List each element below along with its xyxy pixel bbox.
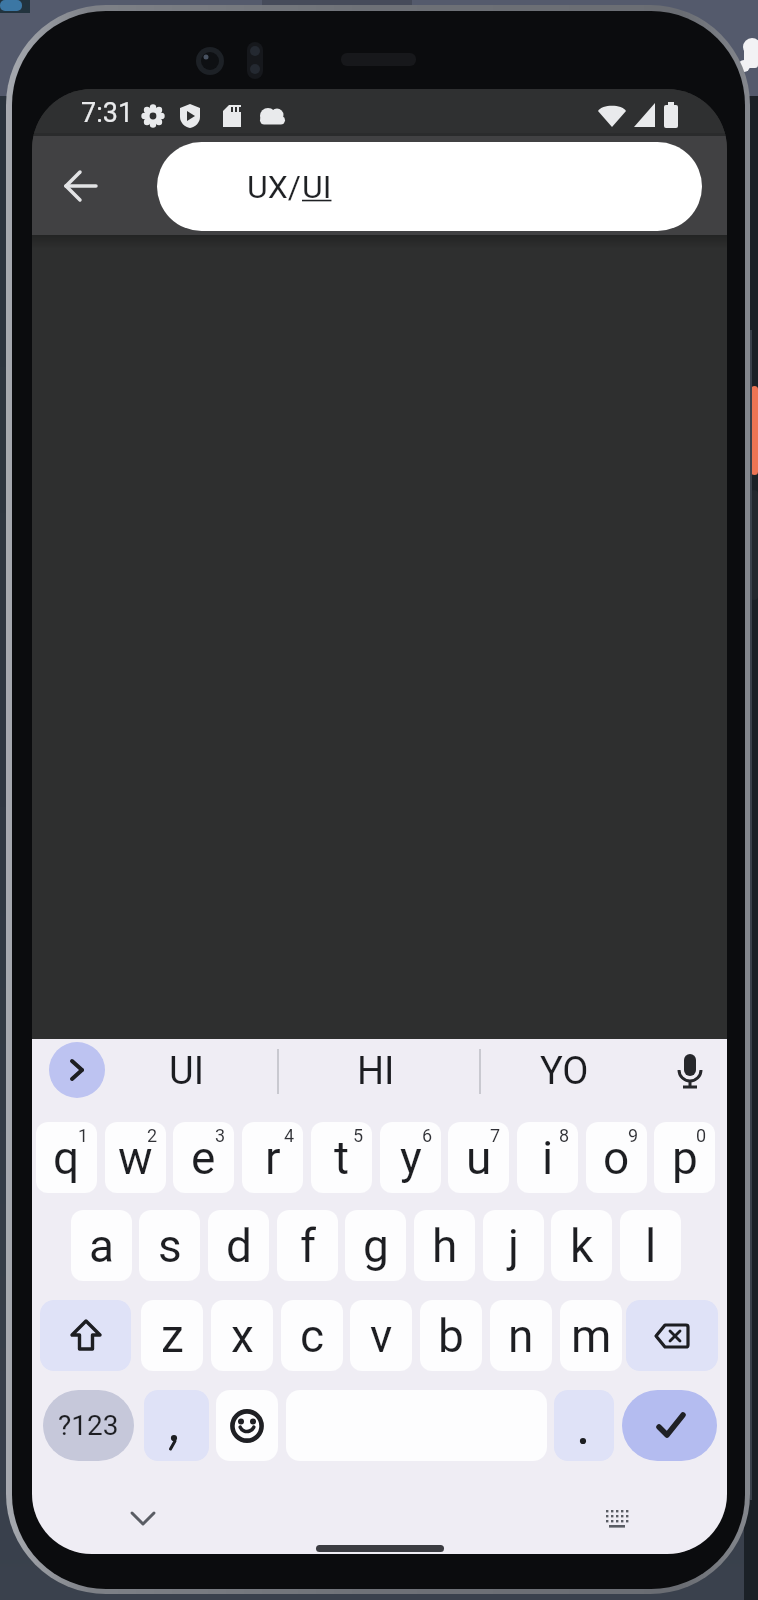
button[interactable] <box>57 162 105 210</box>
button[interactable]: h <box>414 1210 475 1281</box>
button[interactable]: y <box>380 1122 441 1193</box>
staticText: UX/ <box>247 168 302 206</box>
staticText: 2 <box>147 1125 158 1146</box>
staticText: 1 <box>78 1125 89 1146</box>
staticText: c <box>300 1309 325 1363</box>
button[interactable]: u <box>448 1122 509 1193</box>
staticText: t <box>334 1131 350 1185</box>
button[interactable]: HI <box>316 1044 436 1099</box>
staticText: b <box>438 1309 464 1363</box>
staticText: 0 <box>696 1125 707 1146</box>
button[interactable] <box>658 1039 722 1103</box>
staticText: z <box>161 1309 184 1363</box>
staticText: q <box>53 1131 80 1185</box>
button[interactable] <box>622 1390 717 1461</box>
button[interactable]: l <box>620 1210 681 1281</box>
staticText: y <box>400 1131 422 1185</box>
staticText: g <box>363 1219 389 1273</box>
staticText: o <box>603 1131 630 1185</box>
staticText: 5 <box>353 1125 364 1146</box>
button[interactable]: m <box>560 1300 622 1371</box>
button[interactable]: UX/ <box>157 142 702 231</box>
staticText: f <box>300 1219 316 1273</box>
staticText: ?123 <box>58 1409 119 1442</box>
staticText: r <box>265 1131 281 1185</box>
button[interactable]: c <box>281 1300 343 1371</box>
button[interactable] <box>144 1390 209 1461</box>
button[interactable]: g <box>345 1210 406 1281</box>
button[interactable]: v <box>350 1300 412 1371</box>
staticText: HI <box>357 1049 395 1094</box>
staticText: UI <box>169 1049 204 1094</box>
staticText: 6 <box>422 1125 433 1146</box>
button[interactable] <box>626 1300 718 1371</box>
staticText: v <box>370 1309 393 1363</box>
staticText: h <box>432 1219 458 1273</box>
button[interactable]: w <box>105 1122 166 1193</box>
button[interactable] <box>554 1390 614 1461</box>
button[interactable]: k <box>551 1210 612 1281</box>
button[interactable]: q <box>36 1122 97 1193</box>
staticText: 8 <box>559 1125 570 1146</box>
staticText: p <box>672 1131 698 1185</box>
button[interactable] <box>111 1486 175 1550</box>
button[interactable]: p <box>654 1122 715 1193</box>
staticText: 7 <box>490 1125 501 1146</box>
staticText: u <box>466 1131 492 1185</box>
button[interactable] <box>585 1486 649 1550</box>
button[interactable]: s <box>139 1210 200 1281</box>
staticText: 3 <box>215 1125 226 1146</box>
staticText: l <box>645 1219 657 1273</box>
button[interactable]: ?123 <box>43 1390 134 1461</box>
staticText: i <box>542 1131 554 1185</box>
button[interactable]: f <box>277 1210 338 1281</box>
staticText: d <box>226 1219 252 1273</box>
button[interactable]: e <box>173 1122 234 1193</box>
button[interactable]: YO <box>504 1044 624 1099</box>
button[interactable]: b <box>420 1300 482 1371</box>
button[interactable]: UI <box>126 1044 246 1099</box>
staticText: UI <box>302 168 332 206</box>
button[interactable]: o <box>586 1122 647 1193</box>
staticText: 7:31 <box>81 97 134 129</box>
button[interactable] <box>216 1390 278 1461</box>
button[interactable]: d <box>208 1210 269 1281</box>
button[interactable]: j <box>483 1210 544 1281</box>
button[interactable]: r <box>242 1122 303 1193</box>
staticText: j <box>508 1219 520 1273</box>
button[interactable]: n <box>490 1300 552 1371</box>
button[interactable] <box>49 1042 105 1098</box>
staticText: w <box>118 1131 153 1185</box>
staticText: e <box>191 1131 216 1185</box>
staticText: a <box>89 1219 115 1273</box>
staticText: 9 <box>628 1125 639 1146</box>
staticText: 4 <box>284 1125 295 1146</box>
staticText: k <box>570 1219 594 1273</box>
button[interactable]: a <box>71 1210 132 1281</box>
staticText: s <box>158 1219 182 1273</box>
staticText: m <box>571 1309 612 1363</box>
button[interactable]: z <box>141 1300 203 1371</box>
button[interactable]: i <box>517 1122 578 1193</box>
staticText: YO <box>540 1049 589 1094</box>
staticText: n <box>508 1309 534 1363</box>
staticText: x <box>231 1309 254 1363</box>
button[interactable] <box>40 1300 131 1371</box>
button[interactable]: t <box>311 1122 372 1193</box>
button[interactable]: x <box>211 1300 273 1371</box>
